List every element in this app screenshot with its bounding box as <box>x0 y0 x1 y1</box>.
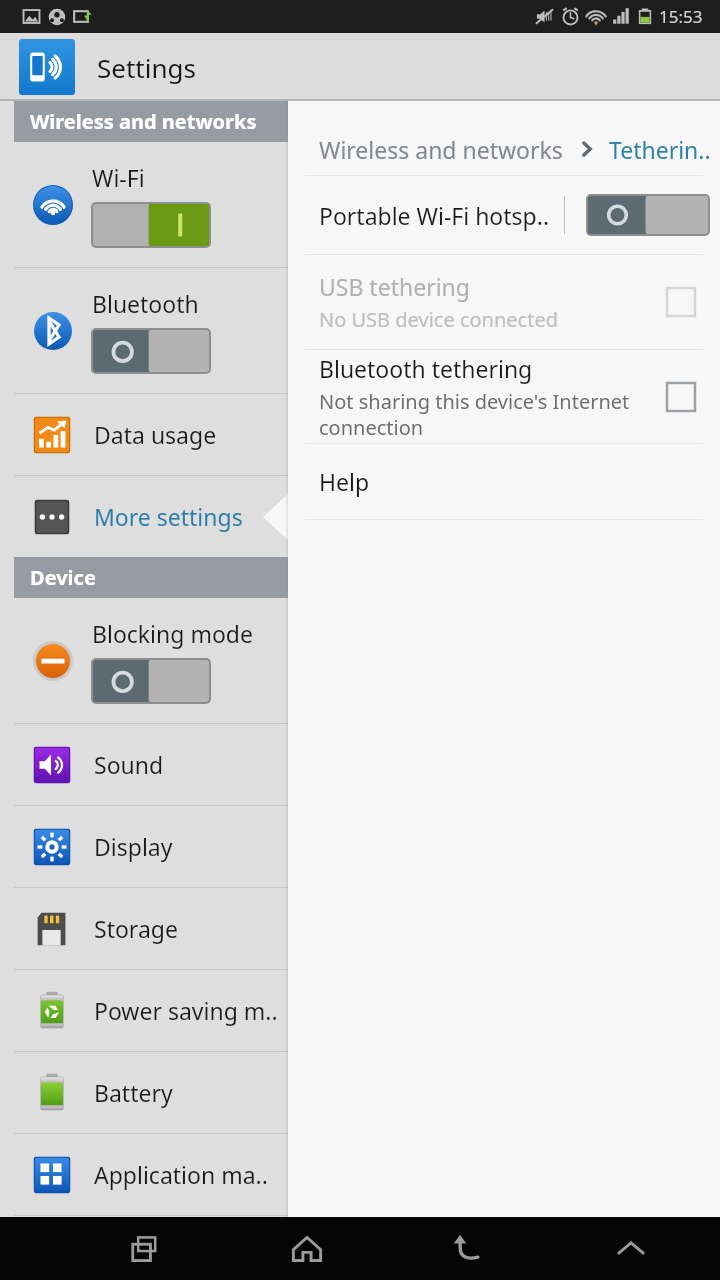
staticText: USB tethering <box>319 271 470 302</box>
button[interactable]: Blocking mode switch <box>92 659 210 703</box>
button[interactable]: Portable Wi-Fi hotsp.. <box>288 176 720 254</box>
staticText: Bluetooth <box>92 288 199 319</box>
button[interactable]: Bluetooth switch <box>92 329 210 373</box>
button[interactable]: Battery <box>0 1052 288 1133</box>
button[interactable]: Home <box>269 1217 345 1280</box>
staticText: Blocking mode <box>92 618 253 649</box>
staticText: Not sharing this device's Internet conne… <box>319 388 630 441</box>
button[interactable]: Help <box>288 444 720 519</box>
staticText: 15:53 <box>659 5 703 28</box>
button[interactable]: Sound <box>0 724 288 805</box>
button[interactable]: More settings <box>0 476 288 557</box>
button[interactable]: Storage <box>0 888 288 969</box>
button[interactable]: Portable Wi-Fi hotspot switch <box>587 195 709 235</box>
staticText: Bluetooth tethering <box>319 353 533 384</box>
staticText: Device <box>30 564 96 591</box>
staticText: No USB device connected <box>319 306 558 333</box>
staticText: More settings <box>94 501 243 532</box>
staticText: Storage <box>94 913 178 944</box>
button[interactable]: Bluetooth <box>0 268 288 393</box>
button[interactable]: USB tethering checkbox <box>666 287 696 317</box>
staticText: Data usage <box>94 419 217 450</box>
button[interactable]: Wi-Fi switch <box>92 203 210 247</box>
button[interactable]: Application ma.. <box>0 1134 288 1215</box>
button[interactable]: Bluetooth tethering checkbox <box>666 382 696 412</box>
staticText: Application ma.. <box>94 1159 268 1190</box>
button[interactable]: Data usage <box>0 394 288 475</box>
button[interactable]: Settings <box>19 39 75 95</box>
button[interactable]: Display <box>0 806 288 887</box>
button[interactable]: USB tethering <box>288 255 720 349</box>
staticText: Tetherin.. <box>609 134 711 165</box>
button[interactable]: Power saving m.. <box>0 970 288 1051</box>
button[interactable]: Bluetooth tethering <box>288 350 720 443</box>
button[interactable]: Show keyboard <box>593 1217 669 1280</box>
staticText: Help <box>319 466 370 497</box>
staticText: Settings <box>97 50 196 85</box>
staticText: Display <box>94 831 173 862</box>
staticText: Sound <box>94 749 164 780</box>
button[interactable]: Recent apps <box>107 1217 183 1280</box>
staticText: Wireless and networks <box>319 134 563 165</box>
staticText: Portable Wi-Fi hotsp.. <box>319 200 550 231</box>
staticText: Power saving m.. <box>94 995 278 1026</box>
button[interactable]: Back <box>431 1217 507 1280</box>
button[interactable]: Wireless and networks <box>288 123 720 175</box>
staticText: Wi-Fi <box>92 162 145 193</box>
button[interactable]: Blocking mode <box>0 598 288 723</box>
button[interactable]: Wi-Fi <box>0 142 288 267</box>
staticText: Wireless and networks <box>30 108 257 135</box>
staticText: Battery <box>94 1077 173 1108</box>
